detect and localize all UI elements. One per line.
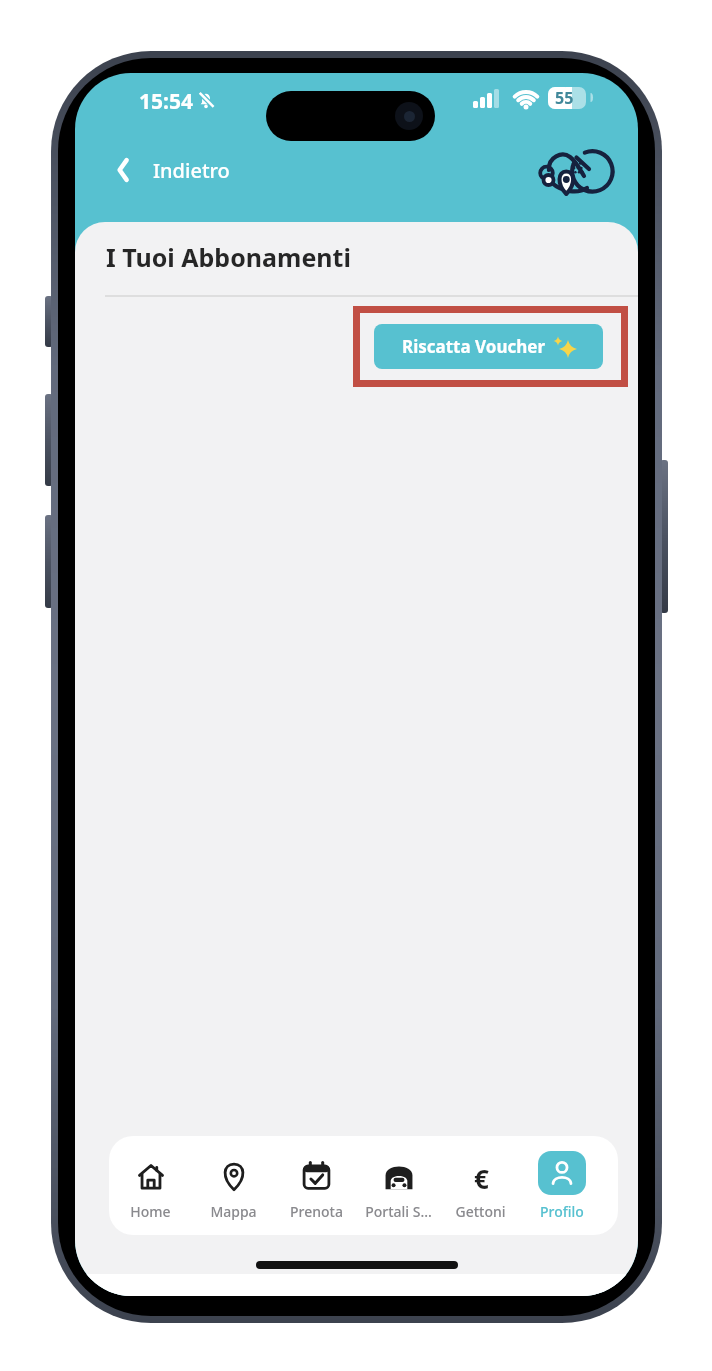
button[interactable]: Home bbox=[109, 1136, 192, 1235]
button[interactable]: Prenota bbox=[275, 1136, 357, 1235]
button[interactable]: Portali S... bbox=[357, 1136, 439, 1235]
button[interactable]: Indietro bbox=[113, 150, 230, 190]
staticText: 55 bbox=[555, 87, 574, 109]
staticText: Profilo bbox=[540, 1202, 584, 1221]
button[interactable]: Mappa bbox=[192, 1136, 275, 1235]
staticText: € bbox=[474, 1161, 489, 1193]
staticText: Portali S... bbox=[365, 1202, 432, 1221]
staticText: Prenota bbox=[290, 1202, 343, 1221]
button[interactable]: Profilo bbox=[521, 1136, 603, 1235]
staticText: Riscatta Voucher bbox=[402, 335, 546, 358]
button[interactable]: € bbox=[439, 1136, 521, 1235]
staticText: I Tuoi Abbonamenti bbox=[106, 240, 351, 274]
staticText: 15:54 bbox=[139, 87, 193, 116]
staticText: Mappa bbox=[210, 1202, 257, 1221]
staticText: Indietro bbox=[153, 157, 230, 184]
staticText: Gettoni bbox=[455, 1202, 506, 1221]
button[interactable]: Riscatta Voucher bbox=[374, 324, 603, 369]
staticText: Home bbox=[130, 1202, 171, 1221]
